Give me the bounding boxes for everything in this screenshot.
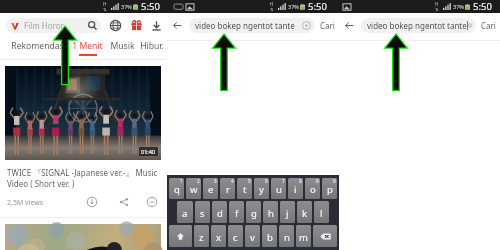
button[interactable]: w: [186, 178, 201, 199]
staticText: k: [302, 207, 308, 220]
staticText: H: [435, 1, 439, 7]
staticText: z: [199, 231, 204, 244]
button[interactable]: u: [271, 178, 286, 199]
staticText: ⇅: [103, 7, 107, 12]
button[interactable]: Cari: [481, 20, 496, 31]
button[interactable]: r: [220, 178, 235, 199]
staticText: 01:40: [141, 148, 156, 155]
staticText: 0: [333, 178, 336, 184]
staticText: Cari: [320, 20, 335, 31]
button[interactable]: Shift: [169, 225, 192, 247]
button[interactable]: m: [296, 225, 311, 247]
button[interactable]: s: [195, 201, 210, 223]
button[interactable]: l: [314, 201, 329, 223]
button[interactable]: e: [203, 178, 218, 199]
button[interactable]: Gift: [130, 19, 143, 32]
staticText: 37%: [288, 3, 299, 10]
button[interactable]: Musik: [109, 38, 136, 56]
staticText: 4: [231, 178, 234, 184]
staticText: d: [217, 207, 223, 220]
button[interactable]: Language: [109, 19, 122, 32]
button[interactable]: a: [177, 201, 193, 223]
staticText: Rekomendas: [11, 40, 64, 52]
staticText: Cari: [481, 20, 496, 31]
staticText: a: [182, 207, 188, 220]
staticText: 37%: [453, 3, 464, 10]
staticText: 1 Menit: [72, 40, 103, 52]
button[interactable]: [5, 224, 161, 250]
staticText: H: [103, 1, 107, 7]
staticText: t: [243, 183, 247, 196]
button[interactable]: c: [228, 225, 243, 247]
button[interactable]: Hibur.: [139, 38, 165, 56]
button[interactable]: h: [263, 201, 278, 223]
button[interactable]: p: [322, 178, 337, 199]
staticText: Hibur.: [140, 40, 164, 52]
staticText: 5:50: [308, 0, 327, 13]
staticText: e: [208, 183, 214, 196]
staticText: 37%: [121, 3, 132, 10]
button[interactable]: o: [305, 178, 320, 199]
staticText: f: [235, 207, 239, 220]
button[interactable]: t: [237, 178, 252, 199]
staticText: 9: [316, 178, 319, 184]
button[interactable]: b: [262, 225, 277, 247]
staticText: ⇅: [270, 7, 274, 12]
staticText: h: [268, 207, 274, 220]
staticText: b: [267, 231, 273, 244]
button[interactable]: i: [288, 178, 303, 199]
button[interactable]: Clear: [468, 21, 472, 30]
staticText: l: [320, 207, 323, 220]
button[interactable]: f: [229, 201, 244, 223]
other: Shift: [176, 232, 185, 241]
staticText: 2,5M views: [7, 198, 44, 208]
button[interactable]: d: [212, 201, 227, 223]
button[interactable]: g: [246, 201, 261, 223]
staticText: c: [233, 231, 238, 244]
button[interactable]: n: [279, 225, 294, 247]
button[interactable]: y: [254, 178, 269, 199]
button[interactable]: x: [211, 225, 226, 247]
other: Backspace: [320, 233, 331, 240]
staticText: y: [259, 183, 264, 196]
staticText: 5:50: [473, 0, 492, 13]
button[interactable]: Download: [150, 19, 163, 32]
staticText: video bokep ngentot tante: [367, 20, 467, 31]
button[interactable]: k: [297, 201, 312, 223]
button[interactable]: Back: [171, 19, 184, 32]
button[interactable]: More: [146, 196, 158, 208]
button[interactable]: Download: [86, 196, 98, 208]
button[interactable]: Rekomendas: [10, 38, 65, 56]
button[interactable]: Clear: [302, 21, 311, 30]
staticText: s: [200, 207, 205, 220]
staticText: q: [174, 183, 180, 196]
staticText: 2: [197, 178, 200, 184]
staticText: 7: [282, 178, 285, 184]
button[interactable]: 1 Menit: [71, 38, 104, 58]
button[interactable]: video bokep ngentot tante: [189, 18, 315, 33]
staticText: g: [251, 207, 257, 220]
button[interactable]: Share: [118, 196, 130, 208]
button[interactable]: Backspace: [313, 225, 337, 247]
other: Search: [87, 20, 98, 31]
button[interactable]: video bokep ngentot tante: [361, 18, 476, 33]
button[interactable]: Cari: [320, 20, 335, 31]
staticText: v: [250, 231, 255, 244]
button[interactable]: Back: [343, 19, 356, 32]
staticText: w: [190, 183, 198, 196]
button[interactable]: Film Horor: [6, 18, 101, 33]
staticText: TWICE 『SIGNAL -Japanese ver.-』 Music Vid…: [7, 167, 158, 189]
staticText: x: [216, 231, 222, 244]
staticText: o: [310, 183, 316, 196]
staticText: m: [299, 231, 308, 244]
button[interactable]: j: [280, 201, 295, 223]
button[interactable]: v: [245, 225, 260, 247]
staticText: n: [284, 231, 290, 244]
staticText: u: [276, 183, 282, 196]
staticText: Film Horor: [24, 20, 64, 31]
button[interactable]: z: [194, 225, 209, 247]
staticText: Musik: [110, 40, 135, 52]
button[interactable]: 01:40: [5, 66, 161, 160]
button[interactable]: q: [169, 178, 184, 199]
staticText: ⇅: [435, 7, 439, 12]
